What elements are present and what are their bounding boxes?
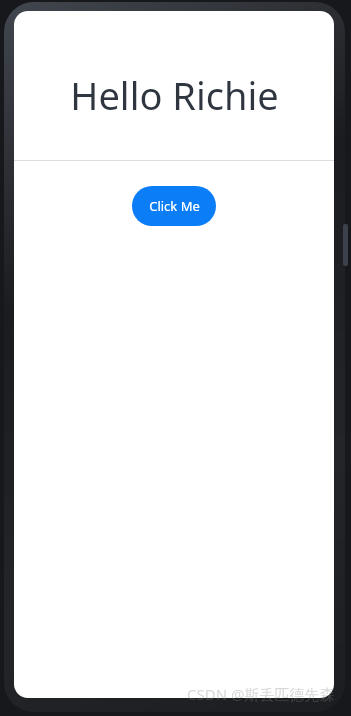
staticText: Click Me	[149, 197, 200, 215]
staticText: CSDN @斯丢匹德先森	[187, 684, 335, 704]
button[interactable]: Click Me	[132, 186, 216, 226]
staticText: Hello Richie	[70, 69, 279, 121]
